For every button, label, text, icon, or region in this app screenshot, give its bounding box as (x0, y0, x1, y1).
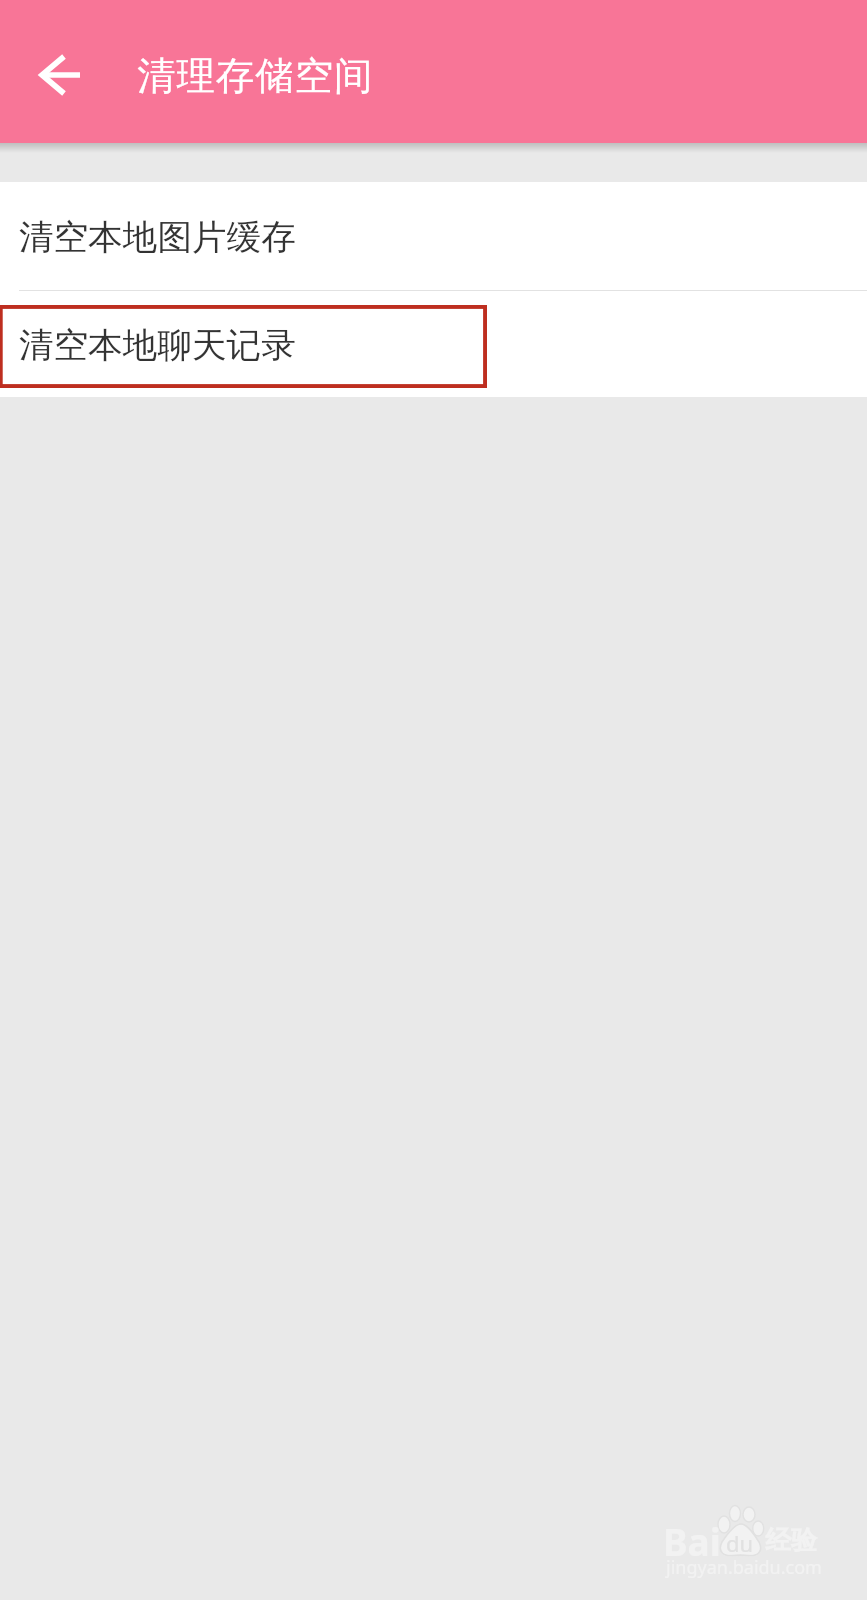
staticText: Bai (663, 1516, 721, 1566)
staticText: 经验 (765, 1524, 817, 1557)
staticText: 清空本地聊天记录 (19, 324, 296, 368)
button[interactable]: 清空本地图片缓存 (0, 182, 867, 290)
staticText: 清空本地图片缓存 (19, 216, 296, 260)
button[interactable]: Back (30, 51, 78, 99)
staticText: jingyan.baidu.com (666, 1555, 822, 1580)
staticText: du (726, 1528, 754, 1558)
button[interactable]: 清空本地聊天记录 (0, 291, 867, 397)
staticText: 清理存储空间 (137, 52, 374, 101)
